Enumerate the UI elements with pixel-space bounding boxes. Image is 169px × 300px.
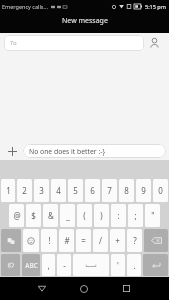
- staticText: To: [10, 39, 17, 47]
- button[interactable]: 1: [1, 179, 15, 202]
- button[interactable]: (: [77, 204, 92, 227]
- button[interactable]: 8: [119, 179, 134, 202]
- button[interactable]: Back: [21, 277, 63, 300]
- staticText: ;: [134, 210, 137, 221]
- button[interactable]: $: [26, 204, 41, 227]
- button[interactable]: @: [9, 204, 24, 227]
- button[interactable]: Enter: [143, 254, 168, 276]
- button[interactable]: Recent apps: [105, 277, 147, 300]
- button[interactable]: Add attachment: [3, 142, 21, 160]
- button[interactable]: -: [57, 254, 71, 276]
- staticText: 4: [56, 185, 61, 196]
- button[interactable]: :: [111, 204, 126, 227]
- button[interactable]: ABC: [22, 254, 40, 276]
- button[interactable]: 9: [136, 179, 151, 202]
- button[interactable]: 2: [17, 179, 32, 202]
- button[interactable]: Symbols: [1, 229, 21, 252]
- button[interactable]: ?: [127, 229, 142, 252]
- button[interactable]: No one does it better :-}: [23, 144, 166, 158]
- button[interactable]: !: [41, 229, 57, 252]
- staticText: ABC: [25, 261, 38, 270]
- staticText: &: [48, 210, 54, 221]
- button[interactable]: Space: [73, 254, 109, 276]
- staticText: ?: [133, 235, 137, 246]
- button[interactable]: Emoji: [23, 229, 39, 252]
- button[interactable]: 4: [51, 179, 66, 202]
- button[interactable]: Home: [63, 277, 105, 300]
- staticText: 5:15 pm: [145, 3, 166, 10]
- button[interactable]: ): [94, 204, 109, 227]
- button[interactable]: _: [60, 204, 75, 227]
- button[interactable]: #: [59, 229, 74, 252]
- button[interactable]: 0: [153, 179, 168, 202]
- button[interactable]: 7: [102, 179, 117, 202]
- staticText: 9: [141, 185, 146, 196]
- staticText: =: [81, 235, 86, 246]
- staticText: 5: [73, 185, 78, 196]
- staticText: 2: [22, 185, 27, 196]
- button[interactable]: 5: [68, 179, 83, 202]
- button[interactable]: Backspace: [144, 229, 168, 252]
- staticText: 3: [39, 185, 44, 196]
- button[interactable]: /: [93, 229, 108, 252]
- button[interactable]: Add contact: [144, 33, 165, 53]
- staticText: 1: [6, 185, 11, 196]
- button[interactable]: 3: [34, 179, 49, 202]
- button[interactable]: Voice input: [1, 254, 20, 276]
- staticText: (: [83, 210, 86, 221]
- button[interactable]: .: [127, 254, 141, 276]
- staticText: 0: [158, 185, 163, 196]
- staticText: Emergency calls...: [2, 3, 48, 10]
- button[interactable]: ": [145, 204, 160, 227]
- staticText: !: [48, 235, 51, 246]
- button[interactable]: 6: [85, 179, 100, 202]
- staticText: New message: [62, 16, 108, 26]
- staticText: _: [66, 210, 70, 221]
- staticText: #: [64, 235, 70, 246]
- staticText: $: [31, 210, 36, 221]
- staticText: ): [100, 210, 103, 221]
- staticText: No one does it better :-}: [29, 147, 106, 156]
- staticText: :: [117, 210, 120, 221]
- staticText: 6: [90, 185, 95, 196]
- button[interactable]: ': [111, 254, 125, 276]
- staticText: +: [115, 235, 120, 246]
- button[interactable]: ,: [42, 254, 55, 276]
- staticText: -: [63, 260, 66, 271]
- staticText: 7: [107, 185, 112, 196]
- staticText: @: [13, 210, 21, 221]
- button[interactable]: To: [4, 35, 144, 51]
- button[interactable]: =: [76, 229, 91, 252]
- button[interactable]: +: [110, 229, 125, 252]
- staticText: ,: [47, 260, 50, 271]
- button[interactable]: ;: [128, 204, 143, 227]
- staticText: /: [99, 235, 102, 246]
- staticText: ": [151, 210, 155, 221]
- button[interactable]: &: [43, 204, 58, 227]
- staticText: .: [133, 260, 136, 271]
- staticText: 8: [124, 185, 129, 196]
- staticText: ': [117, 260, 119, 271]
